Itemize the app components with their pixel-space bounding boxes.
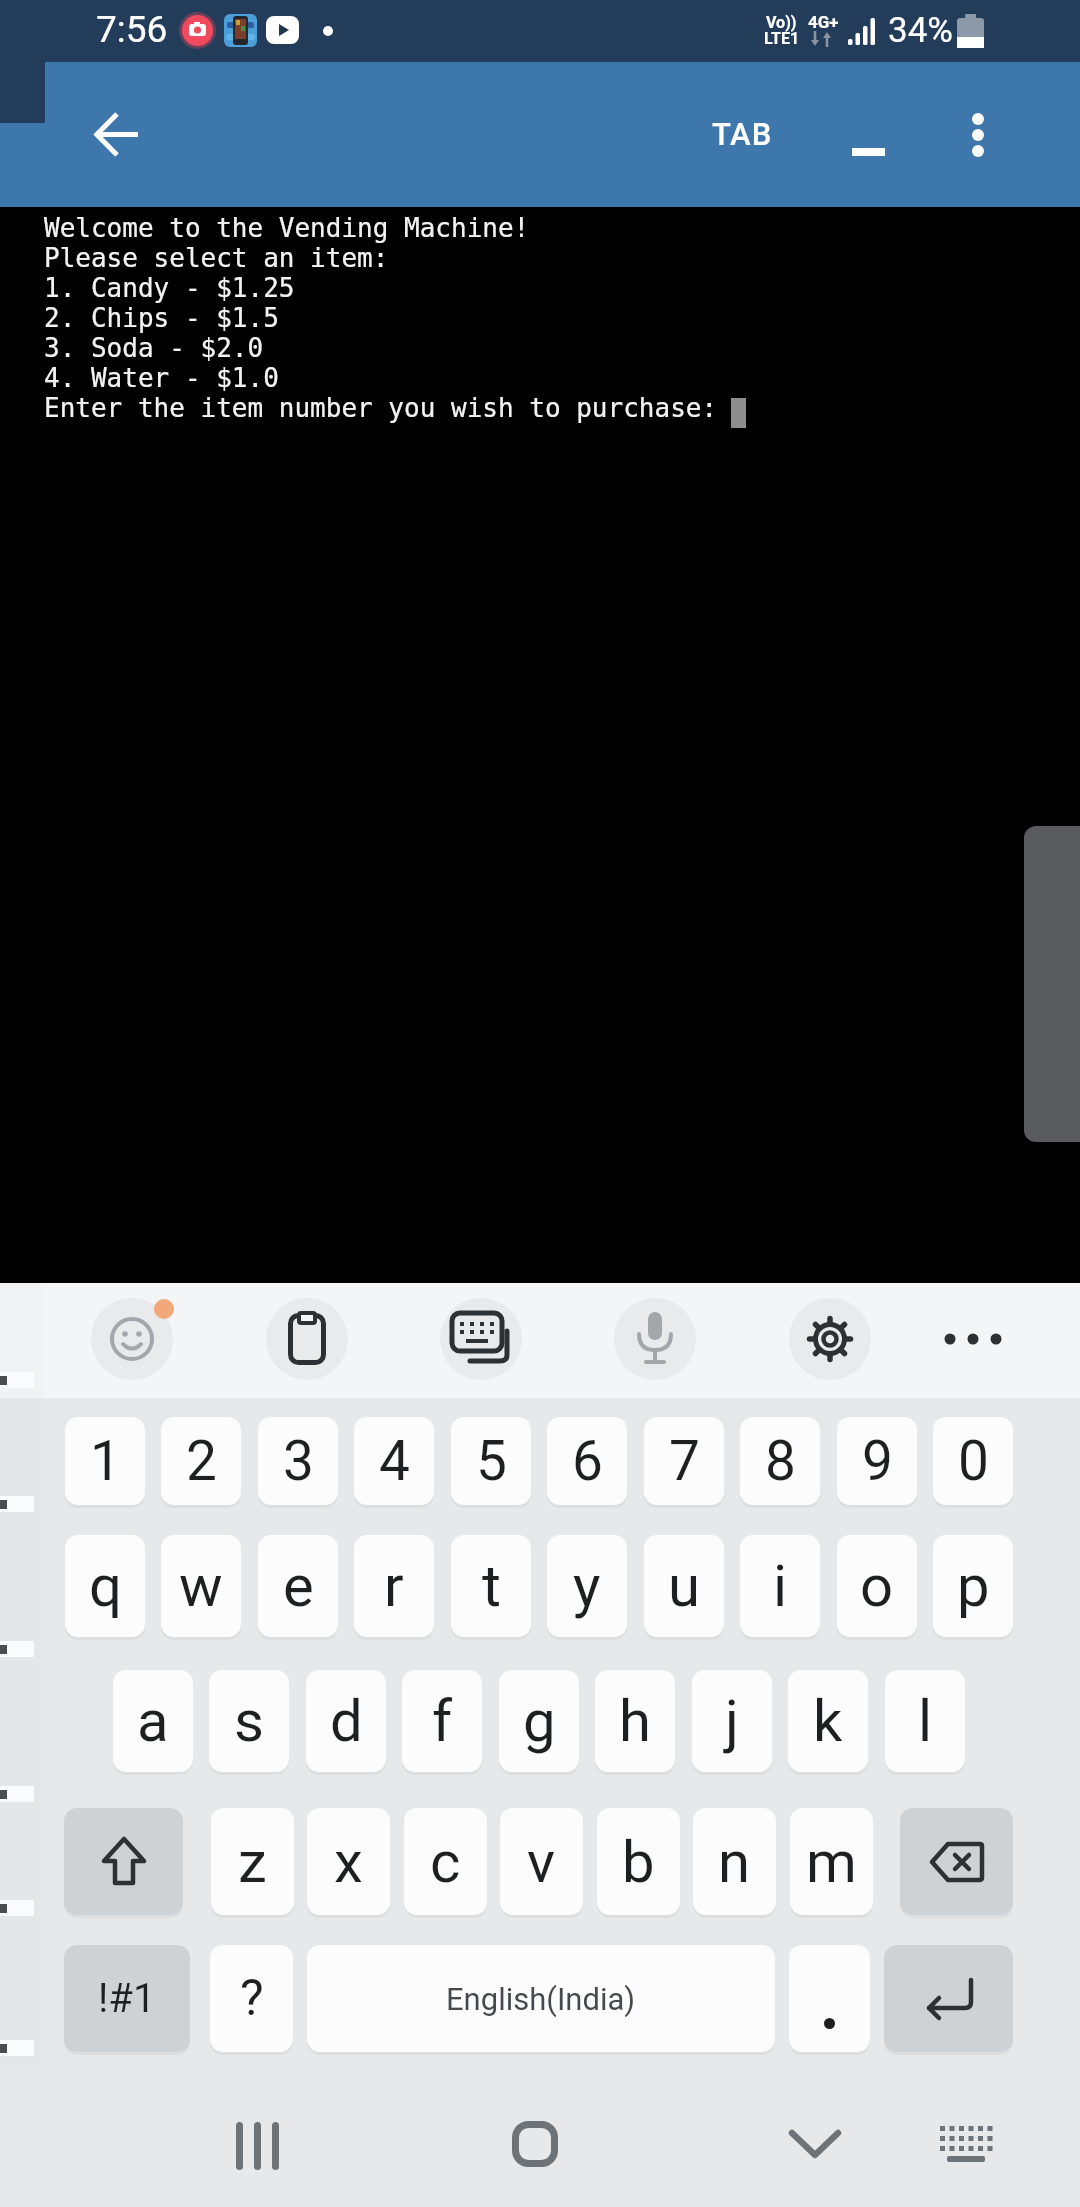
button[interactable] <box>884 1945 1013 2052</box>
button[interactable]: 2 <box>161 1417 241 1505</box>
staticText: t <box>482 1552 501 1620</box>
staticText: ? <box>240 1969 264 2028</box>
staticText: c <box>430 1828 461 1896</box>
button[interactable] <box>614 1298 696 1380</box>
staticText: f <box>432 1687 453 1755</box>
button[interactable]: f <box>402 1670 482 1772</box>
button[interactable]: d <box>306 1670 386 1772</box>
button[interactable]: p <box>933 1535 1013 1637</box>
button[interactable]: ? <box>210 1945 293 2052</box>
staticText: p <box>957 1552 990 1620</box>
staticText: 9 <box>862 1429 893 1493</box>
button[interactable]: s <box>209 1670 289 1772</box>
button[interactable]: e <box>258 1535 338 1637</box>
button[interactable] <box>512 2121 558 2167</box>
staticText: 4 <box>379 1429 410 1493</box>
button[interactable] <box>789 2130 841 2158</box>
button[interactable]: i <box>740 1535 820 1637</box>
staticText: a <box>137 1687 169 1755</box>
button[interactable]: x <box>307 1808 390 1915</box>
staticText: x <box>334 1828 363 1896</box>
staticText: e <box>283 1552 314 1620</box>
staticText: 1 <box>90 1429 121 1493</box>
button[interactable]: !#1 <box>64 1945 190 2052</box>
button[interactable] <box>789 1298 871 1380</box>
button[interactable] <box>1024 826 1080 1142</box>
staticText: j <box>725 1687 739 1755</box>
button[interactable]: 5 <box>451 1417 531 1505</box>
button[interactable]: o <box>837 1535 917 1637</box>
staticText: b <box>622 1828 655 1896</box>
button[interactable]: k <box>788 1670 868 1772</box>
button[interactable]: 3 <box>258 1417 338 1505</box>
button[interactable]: u <box>644 1535 724 1637</box>
staticText: 1. Candy - $1.25 <box>44 273 295 303</box>
button[interactable]: t <box>451 1535 531 1637</box>
button[interactable]: z <box>211 1808 294 1915</box>
staticText: Welcome to the Vending Machine! <box>44 213 530 243</box>
button[interactable] <box>91 1298 173 1380</box>
staticText: 0 <box>958 1429 989 1493</box>
staticText: o <box>860 1552 894 1620</box>
button[interactable] <box>944 1333 1008 1345</box>
button[interactable]: 0 <box>933 1417 1013 1505</box>
staticText: 34% <box>888 10 953 51</box>
button[interactable]: l <box>885 1670 965 1772</box>
button[interactable] <box>900 1808 1013 1915</box>
staticText: !#1 <box>98 1975 156 2022</box>
staticText: 4. Water - $1.0 <box>44 363 279 393</box>
button[interactable]: v <box>500 1808 583 1915</box>
button[interactable]: a <box>113 1670 193 1772</box>
button[interactable]: y <box>547 1535 627 1637</box>
button[interactable] <box>440 1298 522 1380</box>
staticText: 6 <box>572 1429 603 1493</box>
button[interactable] <box>236 2122 280 2170</box>
button[interactable]: TAB <box>712 116 773 152</box>
button[interactable]: j <box>692 1670 772 1772</box>
button[interactable]: m <box>790 1808 873 1915</box>
staticText: LTE1 <box>764 29 800 48</box>
button[interactable]: b <box>597 1808 680 1915</box>
staticText: q <box>89 1552 122 1620</box>
staticText: u <box>668 1552 700 1620</box>
button[interactable]: 7 <box>644 1417 724 1505</box>
staticText: w <box>179 1552 223 1620</box>
button[interactable]: English(India) <box>307 1945 775 2052</box>
button[interactable]: h <box>595 1670 675 1772</box>
staticText: 7:56 <box>96 8 168 51</box>
staticText: 4G+ <box>808 12 839 32</box>
staticText: i <box>773 1552 788 1620</box>
button[interactable] <box>72 90 162 180</box>
button[interactable]: w <box>161 1535 241 1637</box>
button[interactable]: 8 <box>740 1417 820 1505</box>
button[interactable]: r <box>354 1535 434 1637</box>
button[interactable]: q <box>65 1535 145 1637</box>
button[interactable] <box>938 2124 994 2166</box>
staticText: r <box>384 1552 404 1620</box>
staticText: z <box>238 1828 267 1896</box>
button[interactable]: 1 <box>65 1417 145 1505</box>
button[interactable]: 6 <box>547 1417 627 1505</box>
button[interactable]: n <box>693 1808 776 1915</box>
button[interactable]: 9 <box>837 1417 917 1505</box>
staticText: d <box>330 1687 363 1755</box>
staticText: English(India) <box>446 1981 636 2017</box>
staticText: 7 <box>669 1429 700 1493</box>
staticText: v <box>527 1828 556 1896</box>
staticText: Vo)) <box>766 13 797 32</box>
button[interactable] <box>266 1298 348 1380</box>
staticText: y <box>573 1552 601 1620</box>
button[interactable] <box>789 1945 870 2052</box>
button[interactable] <box>64 1808 183 1915</box>
staticText: 2 <box>186 1429 217 1493</box>
button[interactable]: c <box>404 1808 487 1915</box>
staticText: 3. Soda - $2.0 <box>44 333 264 363</box>
button[interactable]: 4 <box>354 1417 434 1505</box>
staticText: n <box>718 1828 751 1896</box>
button[interactable]: g <box>499 1670 579 1772</box>
staticText: Enter the item number you wish to purcha… <box>44 393 718 423</box>
staticText: Please select an item: <box>44 243 389 273</box>
staticText: 8 <box>765 1429 796 1493</box>
button[interactable] <box>945 90 1011 180</box>
